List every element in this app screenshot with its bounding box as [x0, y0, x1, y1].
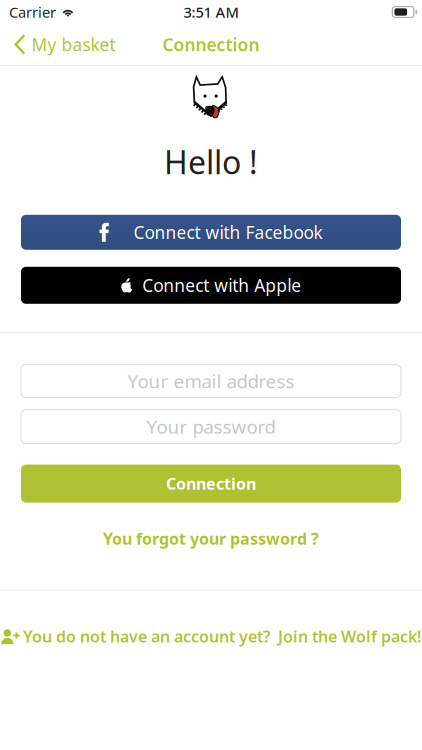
button[interactable]: My basket [0, 24, 123, 65]
staticText: You do not have an account yet? Join the… [23, 626, 421, 647]
staticText: Carrier [9, 2, 56, 22]
button[interactable]: You do not have an account yet? Join the… [1, 626, 421, 646]
staticText: Your password [146, 414, 275, 439]
staticText: Connect with Apple [142, 274, 301, 297]
staticText: Connection [162, 33, 259, 56]
button[interactable]: You forgot your password ? [103, 529, 319, 549]
staticText: Connection [166, 473, 256, 494]
staticText: Connect with Facebook [133, 221, 322, 244]
button[interactable]: Connect with Apple [21, 267, 401, 304]
staticText: You forgot your password ? [103, 528, 319, 549]
staticText: Hello ! [164, 141, 258, 183]
staticText: My basket [31, 33, 115, 56]
button[interactable]: Connection [21, 465, 401, 503]
staticText: 3:51 AM [183, 2, 238, 22]
staticText: Your email address [127, 369, 294, 393]
button[interactable]: Connect with Facebook [21, 215, 401, 250]
